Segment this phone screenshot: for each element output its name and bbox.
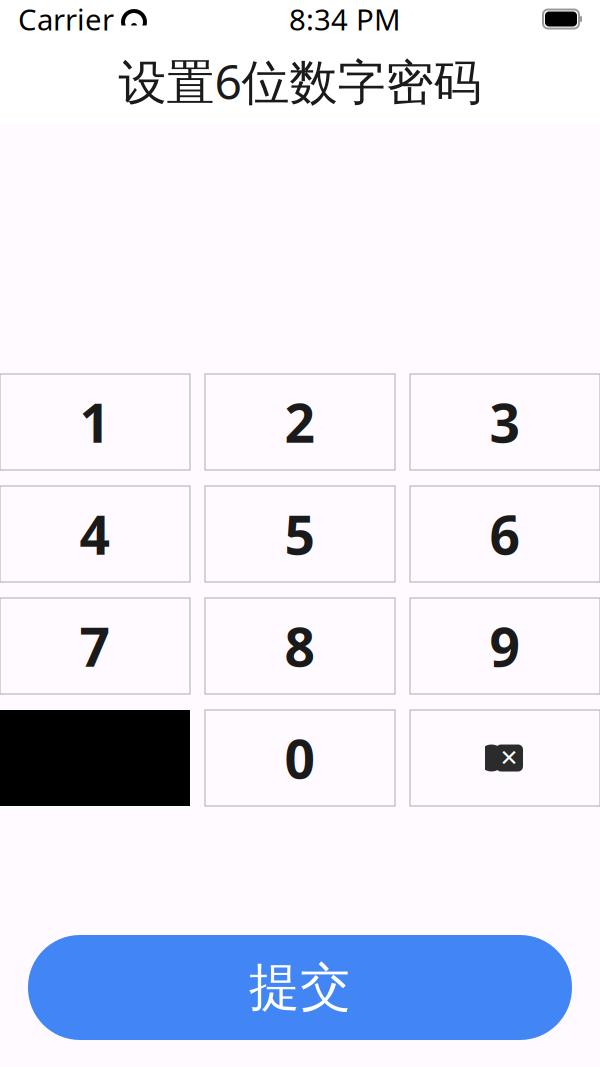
staticText: 2 <box>284 387 315 457</box>
staticText: 7 <box>79 611 110 681</box>
staticText: 6 <box>489 499 520 569</box>
staticText: 1 <box>79 387 110 457</box>
button[interactable]: 9 <box>410 598 600 694</box>
staticText: 设置6位数字密码 <box>118 49 481 113</box>
staticText: 9 <box>489 611 520 681</box>
staticText: 8 <box>284 611 315 681</box>
button[interactable]: 2 <box>205 374 395 470</box>
button[interactable]: 6 <box>410 486 600 582</box>
button[interactable]: 8 <box>205 598 395 694</box>
staticText: ✕ <box>499 745 518 771</box>
staticText: 4 <box>79 499 110 569</box>
button[interactable]: Delete <box>410 710 600 806</box>
button[interactable]: 5 <box>205 486 395 582</box>
staticText: Carrier <box>18 0 114 38</box>
staticText: 8:34 PM <box>289 0 401 38</box>
button[interactable]: 4 <box>0 486 190 582</box>
staticText: 5 <box>284 499 315 569</box>
button[interactable]: 3 <box>410 374 600 470</box>
button[interactable]: 1 <box>0 374 190 470</box>
staticText: 3 <box>489 387 520 457</box>
button[interactable]: 0 <box>205 710 395 806</box>
button[interactable]: 7 <box>0 598 190 694</box>
staticText: 提交 <box>249 956 351 1019</box>
button[interactable]: 提交 <box>28 935 572 1040</box>
staticText: 0 <box>284 723 315 793</box>
